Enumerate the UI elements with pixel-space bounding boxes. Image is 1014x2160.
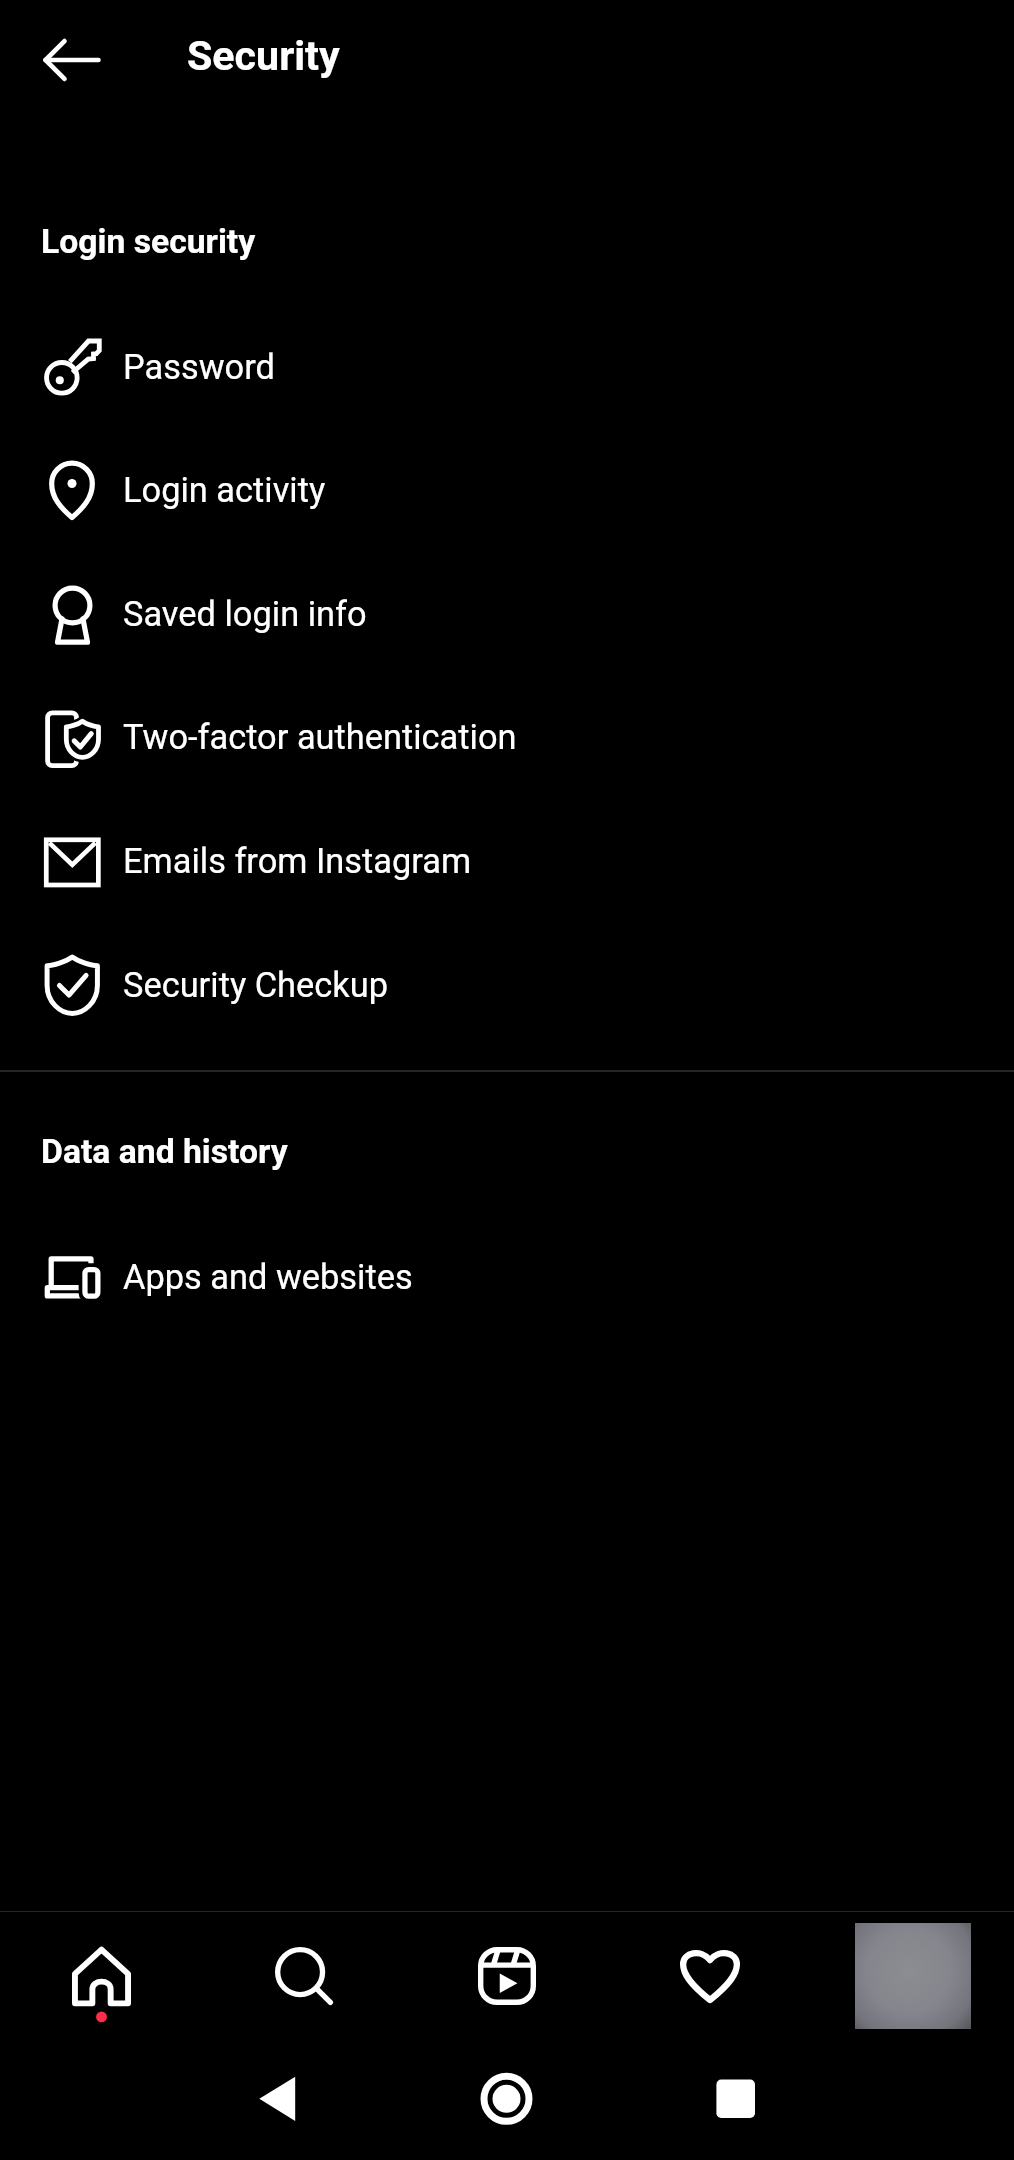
button[interactable]: Reels bbox=[405, 1913, 608, 2050]
button[interactable]: Two-factor authentication bbox=[0, 675, 1014, 799]
staticText: Apps and websites bbox=[123, 1257, 413, 1297]
staticText: Login activity bbox=[123, 470, 326, 510]
staticText: Data and history bbox=[41, 1132, 288, 1171]
staticText: Security bbox=[187, 32, 340, 80]
button[interactable]: Home bbox=[0, 1913, 202, 2050]
staticText: Password bbox=[123, 347, 275, 387]
button[interactable]: Back bbox=[28, 16, 116, 104]
staticText: Two-factor authentication bbox=[123, 717, 517, 757]
staticText: Emails from Instagram bbox=[123, 841, 472, 881]
button[interactable]: Password bbox=[0, 305, 1014, 429]
button[interactable]: Likes bbox=[608, 1913, 811, 2050]
button[interactable]: Login activity bbox=[0, 428, 1014, 552]
button[interactable]: Emails from Instagram bbox=[0, 799, 1014, 923]
button[interactable]: Security Checkup bbox=[0, 923, 1014, 1047]
button[interactable]: Apps and websites bbox=[0, 1215, 1014, 1339]
staticText: Saved login info bbox=[123, 594, 367, 634]
button[interactable]: Saved login info bbox=[0, 552, 1014, 676]
staticText: Login security bbox=[41, 222, 256, 261]
button[interactable]: Search bbox=[202, 1913, 405, 2050]
button[interactable]: Profile bbox=[855, 1923, 971, 2029]
staticText: Security Checkup bbox=[123, 965, 388, 1005]
